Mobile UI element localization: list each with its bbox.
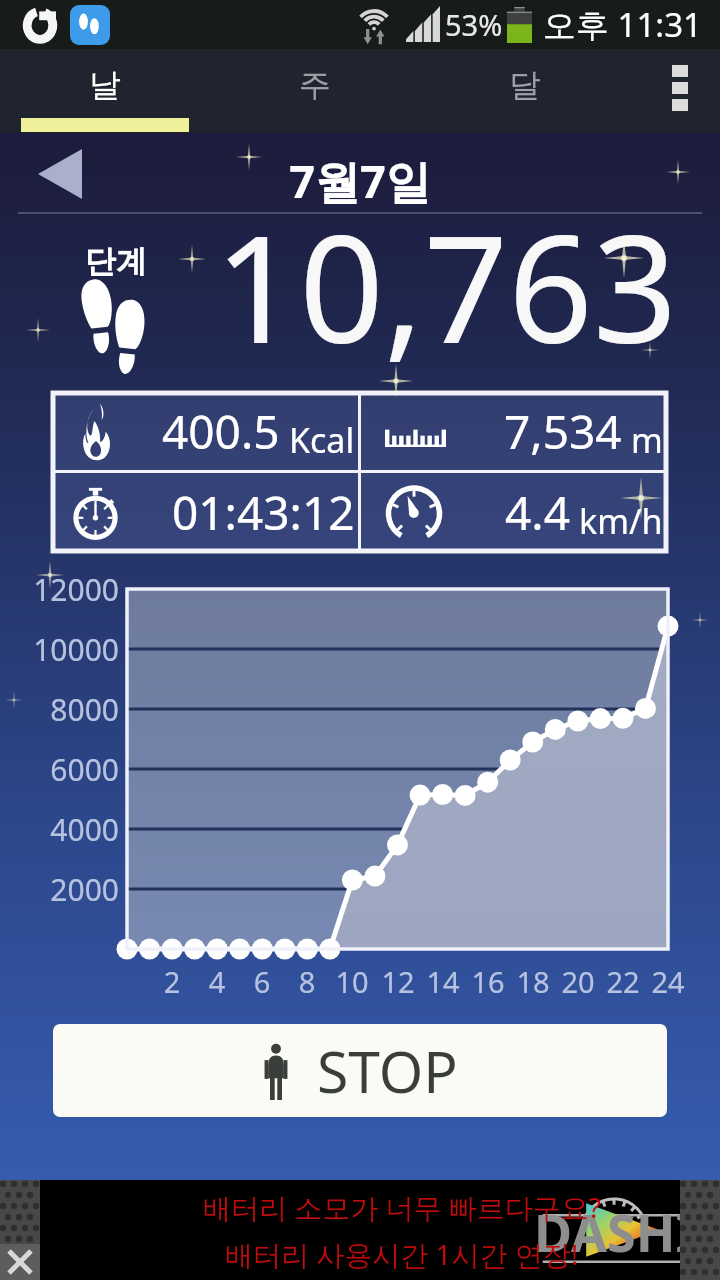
- staticText: 날: [89, 65, 121, 105]
- staticText: Kcal: [289, 417, 355, 463]
- button[interactable]: DASHIN: [0, 1180, 720, 1280]
- staticText: km/h: [579, 498, 663, 544]
- button[interactable]: Previous day: [24, 143, 96, 205]
- staticText: 01:43:12: [172, 481, 355, 544]
- staticText: 배터리 사용시간 1시간 연장!: [225, 1235, 579, 1273]
- button[interactable]: 주: [210, 49, 420, 133]
- staticText: 22: [583, 962, 663, 1001]
- staticText: 10: [312, 962, 392, 1001]
- staticText: 4000: [0, 809, 119, 850]
- button[interactable]: 달: [420, 49, 630, 133]
- button[interactable]: 01:43:12: [53, 473, 358, 551]
- staticText: DASHIN: [534, 1196, 708, 1270]
- staticText: 단계: [85, 242, 147, 281]
- staticText: 4: [177, 962, 257, 1001]
- staticText: 400.5: [162, 400, 280, 463]
- staticText: 6000: [0, 749, 119, 790]
- staticText: 14: [403, 962, 483, 1001]
- staticText: STOP: [317, 1032, 458, 1110]
- staticText: 8: [267, 962, 347, 1001]
- staticText: 12: [358, 962, 438, 1001]
- button[interactable]: 4.4: [361, 473, 666, 551]
- staticText: 배터리 소모가 너무 빠르다구요?: [203, 1188, 601, 1226]
- button[interactable]: More options: [630, 49, 720, 133]
- staticText: 12000: [0, 569, 119, 610]
- button[interactable]: 날: [0, 49, 210, 133]
- staticText: m: [631, 417, 663, 463]
- staticText: 20: [538, 962, 618, 1001]
- staticText: 7,534: [504, 400, 622, 463]
- staticText: 2: [132, 962, 212, 1001]
- button[interactable]: 400.5: [53, 393, 358, 470]
- button[interactable]: Close ad: [0, 1244, 40, 1280]
- staticText: 2000: [0, 869, 119, 910]
- staticText: 24: [628, 962, 708, 1001]
- staticText: 7월7일: [0, 150, 720, 211]
- button[interactable]: STOP: [53, 1024, 667, 1117]
- staticText: 8000: [0, 689, 119, 730]
- staticText: 주: [299, 65, 331, 105]
- staticText: 오후 11:31: [543, 2, 702, 47]
- staticText: 달: [509, 65, 541, 105]
- button[interactable]: 7,534: [361, 393, 666, 470]
- staticText: 4.4: [505, 481, 570, 544]
- staticText: 10,763: [196, 185, 696, 387]
- staticText: 53%: [445, 5, 503, 44]
- staticText: 18: [493, 962, 573, 1001]
- staticText: 10000: [0, 629, 119, 670]
- staticText: 16: [448, 962, 528, 1001]
- staticText: 6: [222, 962, 302, 1001]
